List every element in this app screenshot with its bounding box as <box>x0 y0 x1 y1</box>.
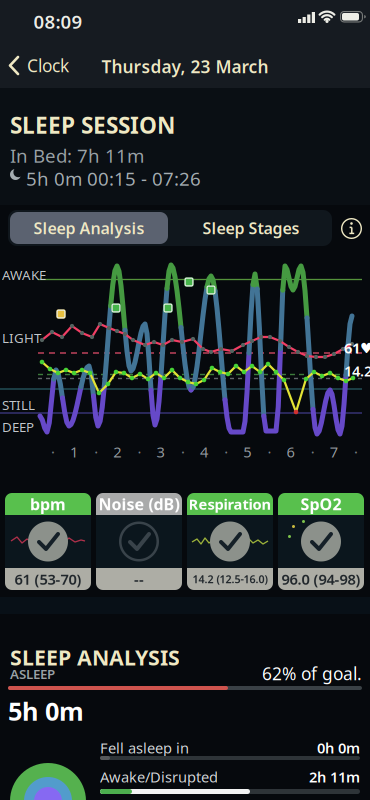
staticText: SLEEP ANALYSIS <box>10 643 180 671</box>
staticText: SpO2 <box>300 493 341 515</box>
staticText: Thursday, 23 March <box>101 55 268 78</box>
staticText: · <box>354 442 358 461</box>
button[interactable]: Sleep Analysis <box>10 212 168 244</box>
staticText: 14.2 <box>344 361 370 380</box>
staticText: · <box>181 442 185 461</box>
staticText: · <box>138 442 142 461</box>
staticText: bpm <box>30 493 66 515</box>
staticText: 6 <box>286 442 294 461</box>
button[interactable]: SpO2 <box>278 493 364 590</box>
button[interactable]: Sleep Stages <box>172 212 330 244</box>
staticText: 5h 0m <box>8 694 84 728</box>
staticText: 3 <box>157 442 165 461</box>
staticText: 2 <box>113 442 121 461</box>
staticText: SLEEP SESSION <box>10 110 175 140</box>
staticText: DEEP <box>2 418 34 436</box>
staticText: · <box>94 442 98 461</box>
staticText: 4 <box>200 442 208 461</box>
button[interactable]: Info <box>341 218 362 239</box>
staticText: · <box>267 442 271 461</box>
staticText: -- <box>134 569 144 589</box>
staticText: 96.0 (94-98) <box>281 569 360 589</box>
staticText: STILL <box>2 396 35 414</box>
staticText: In Bed: 7h 11m <box>10 143 144 168</box>
staticText: Noise (dB) <box>98 493 179 515</box>
button[interactable]: Back <box>8 54 69 77</box>
staticText: 62% of goal. <box>262 662 362 685</box>
button[interactable]: Respiration <box>187 493 273 590</box>
staticText: 5h 0m 00:15 - 07:26 <box>26 166 201 191</box>
staticText: 5 <box>243 442 251 461</box>
staticText: LIGHT <box>2 329 41 347</box>
staticText: 61♥ <box>344 338 370 357</box>
staticText: 14.2 (12.5-16.0) <box>192 572 267 586</box>
staticText: 1 <box>70 442 78 461</box>
staticText: 0h 0m <box>317 738 360 757</box>
staticText: 2h 11m <box>309 767 360 786</box>
staticText: · <box>224 442 228 461</box>
staticText: Awake/Disrupted <box>100 767 218 786</box>
staticText: 08:09 <box>33 9 82 34</box>
staticText: 61 (53-70) <box>14 569 81 589</box>
staticText: Clock <box>27 54 69 77</box>
staticText: AWAKE <box>2 266 46 284</box>
button[interactable]: bpm <box>5 493 91 590</box>
staticText: · <box>311 442 315 461</box>
button[interactable]: Noise (dB) <box>96 493 182 590</box>
staticText: Sleep Stages <box>202 217 299 239</box>
staticText: Fell asleep in <box>100 738 189 757</box>
staticText: 7 <box>330 442 338 461</box>
staticText: Sleep Analysis <box>33 217 144 239</box>
staticText: Respiration <box>188 494 271 514</box>
staticText: ASLEEP <box>10 665 55 683</box>
staticText: · <box>51 442 55 461</box>
